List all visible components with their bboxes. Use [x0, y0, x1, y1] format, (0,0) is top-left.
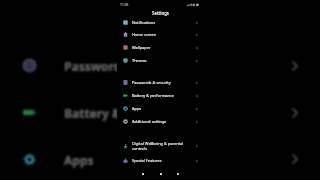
button[interactable]: Home screen: [117, 28, 204, 41]
staticText: Wallpaper: [132, 45, 151, 50]
button[interactable]: Passwords & security: [117, 76, 204, 89]
staticText: Home screen: [132, 32, 157, 37]
staticText: Digital Wellbeing & parental controls: [132, 141, 184, 151]
staticText: Battery & performance: [132, 93, 174, 98]
button[interactable]: Home: [156, 169, 166, 179]
button[interactable]: Apps: [117, 102, 204, 115]
staticText: Notifications: [132, 20, 156, 25]
button[interactable]: Recents: [138, 169, 148, 179]
button[interactable]: Battery & performance: [117, 89, 204, 102]
staticText: Themes: [132, 58, 147, 63]
staticText: Apps: [132, 106, 142, 111]
button[interactable]: Wallpaper: [117, 41, 204, 54]
staticText: Passwords & security: [132, 80, 171, 85]
button[interactable]: Special Features: [117, 154, 204, 167]
staticText: Passwords & security: [64, 58, 191, 74]
staticText: Apps: [64, 152, 94, 168]
staticText: Special Features: [132, 158, 162, 163]
button[interactable]: Notifications: [117, 16, 204, 29]
button[interactable]: Back: [173, 169, 183, 179]
staticText: 11:05: [120, 2, 129, 6]
staticText: Additional settings: [132, 119, 167, 124]
button[interactable]: Additional settings: [117, 115, 204, 128]
button[interactable]: Themes: [117, 54, 204, 67]
button[interactable]: Digital Wellbeing & parental controls: [117, 138, 204, 154]
staticText: Battery & performance: [64, 105, 202, 121]
staticText: Settings: [117, 10, 204, 16]
